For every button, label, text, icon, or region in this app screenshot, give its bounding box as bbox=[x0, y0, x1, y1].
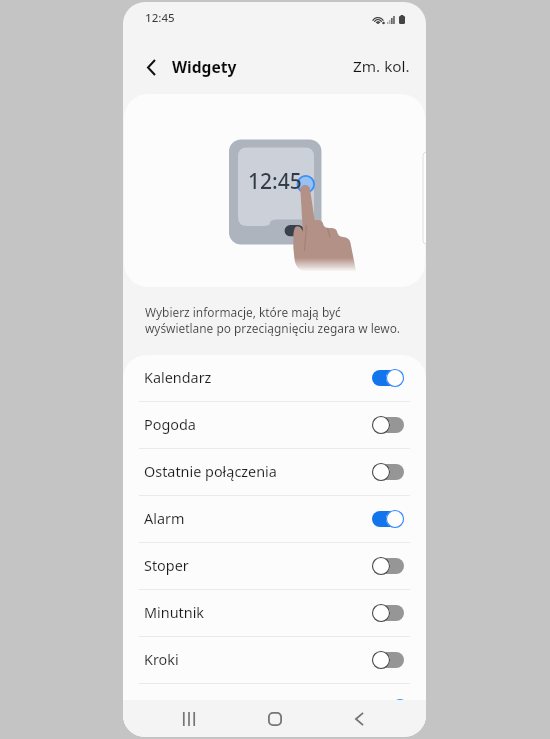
staticText: Alarm bbox=[144, 509, 185, 529]
staticText: Pogoda bbox=[144, 415, 196, 435]
staticText: Zm. kol. bbox=[353, 56, 410, 77]
button[interactable]: Navigate up bbox=[133, 49, 169, 85]
staticText: Widgety bbox=[172, 56, 237, 77]
button[interactable]: Minutnik bbox=[123, 590, 426, 636]
staticText: Kroki bbox=[144, 650, 179, 670]
staticText: Wybierz informacje, które mają być wyświ… bbox=[145, 304, 401, 336]
button[interactable]: Ostatnie połączenia bbox=[123, 449, 426, 495]
button[interactable]: Back bbox=[337, 700, 381, 737]
staticText: Ostatnie połączenia bbox=[144, 462, 277, 482]
button[interactable]: Recent apps bbox=[167, 700, 211, 737]
button[interactable]: Stoper bbox=[123, 543, 426, 589]
staticText: Minutnik bbox=[144, 603, 205, 623]
staticText: 12:45 bbox=[248, 167, 302, 196]
staticText: Muzyka bbox=[140, 699, 189, 717]
button[interactable]: Zm. kol. bbox=[353, 56, 426, 77]
button[interactable]: Kroki bbox=[123, 637, 426, 683]
button[interactable]: Alarm bbox=[123, 496, 426, 542]
button[interactable]: Muzyka bbox=[123, 684, 426, 731]
staticText: Kalendarz bbox=[144, 368, 212, 388]
button[interactable]: Kalendarz bbox=[123, 355, 426, 401]
button[interactable]: Pogoda bbox=[123, 402, 426, 448]
staticText: Stoper bbox=[144, 556, 189, 576]
button[interactable]: Home bbox=[253, 700, 297, 737]
staticText: 12:45 bbox=[145, 10, 175, 26]
